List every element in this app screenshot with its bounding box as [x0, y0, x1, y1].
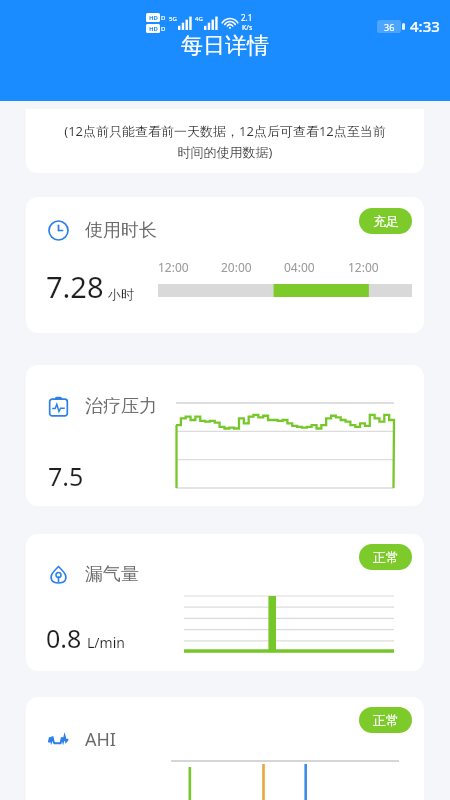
staticText: 小时	[108, 286, 134, 302]
staticText: AHI	[85, 727, 116, 752]
staticText: 每日详情	[181, 32, 269, 60]
button[interactable]: 充足	[359, 208, 412, 234]
staticText: 20:00	[221, 259, 252, 275]
staticText: (12点前只能查看前一天数据，12点后可查看12点至当前 时间的使用数据)	[64, 122, 386, 161]
staticText: L/min	[87, 633, 125, 652]
staticText: 12:00	[158, 259, 189, 275]
staticText: 治疗压力	[85, 395, 157, 418]
other: Therapy pressure	[48, 396, 69, 417]
other: Leak rate	[48, 564, 69, 585]
staticText: 充足	[373, 213, 399, 229]
staticText: 04:00	[284, 259, 315, 275]
staticText: 0.8	[46, 621, 82, 655]
staticText: 2.1	[241, 12, 253, 23]
staticText: D	[161, 14, 166, 22]
button[interactable]: 正常	[359, 707, 412, 733]
button[interactable]: 充足	[26, 197, 424, 333]
other: AHI index	[48, 729, 69, 750]
staticText: 正常	[373, 712, 399, 728]
staticText: K/s	[242, 23, 253, 33]
staticText: 正常	[373, 549, 399, 565]
button[interactable]: (12点前只能查看前一天数据，12点后可查看12点至当前 时间的使用数据)	[26, 109, 424, 173]
staticText: 使用时长	[85, 219, 157, 242]
button[interactable]: Therapy pressure	[26, 365, 424, 506]
staticText: 7.5	[48, 459, 84, 493]
staticText: HD	[149, 14, 158, 22]
staticText: 漏气量	[85, 563, 139, 586]
staticText: 5G	[169, 15, 177, 23]
staticText: 4G	[195, 15, 203, 23]
button[interactable]: 正常	[26, 697, 424, 800]
staticText: 36	[384, 21, 395, 33]
staticText: 7.28	[46, 267, 104, 306]
staticText: 4:33	[410, 16, 440, 36]
staticText: 12:00	[348, 259, 379, 275]
staticText: D	[161, 25, 166, 33]
staticText: HD	[149, 25, 158, 33]
other: Usage duration	[48, 220, 69, 241]
button[interactable]: 正常	[359, 544, 412, 570]
button[interactable]: 正常	[26, 534, 424, 671]
